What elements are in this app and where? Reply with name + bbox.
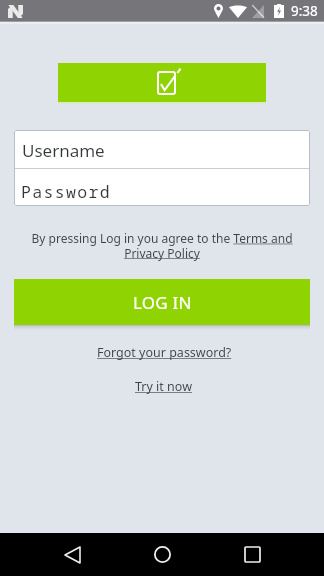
button[interactable]: LOG IN xyxy=(14,279,310,325)
button[interactable]: Password xyxy=(14,169,310,206)
staticText: Forgot your password? xyxy=(97,344,232,361)
button[interactable]: Recent apps xyxy=(230,533,274,576)
button[interactable]: App logo xyxy=(58,63,266,102)
button[interactable]: Username xyxy=(14,130,310,168)
staticText: LOG IN xyxy=(133,291,192,314)
staticText: 9:38 xyxy=(291,2,318,20)
staticText: Password xyxy=(21,180,111,202)
button[interactable]: Home xyxy=(140,533,184,576)
button[interactable]: Try it now xyxy=(128,374,198,398)
staticText: By pressing Log in you agree to the Term… xyxy=(12,230,312,261)
button[interactable]: Forgot your password? xyxy=(94,340,234,364)
staticText: Try it now xyxy=(135,378,192,395)
staticText: Username xyxy=(22,139,105,162)
button[interactable]: Back xyxy=(50,533,94,576)
